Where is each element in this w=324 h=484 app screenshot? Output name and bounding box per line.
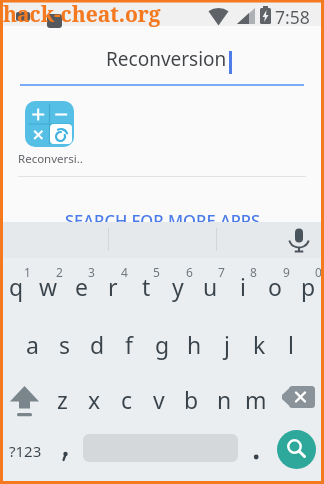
staticText: y [172,271,184,302]
button[interactable]: p [292,260,324,312]
staticText: g [155,329,170,360]
button[interactable]: h [178,318,210,370]
staticText: m [245,384,267,415]
staticText: l [288,329,294,360]
staticText: h [187,329,202,360]
staticText: 3 [88,264,95,277]
button[interactable]: f [113,318,145,370]
button[interactable]: x [78,373,110,425]
staticText: o [268,271,282,302]
button[interactable]: d [81,318,113,370]
button[interactable]: i [227,260,259,312]
staticText: v [153,384,165,415]
button[interactable] [240,436,272,476]
staticText: SEARCH FOR MORE APPS [65,209,260,231]
button[interactable]: SEARCH FOR MORE APPS [0,209,324,231]
button[interactable]: u [194,260,226,312]
staticText: 4 [121,264,128,277]
staticText: ?123 [9,441,42,461]
staticText: s [59,329,71,360]
staticText: w [39,271,58,302]
button[interactable]: g [146,318,178,370]
button[interactable]: a [16,318,48,370]
button[interactable]: Reconversion [0,43,324,75]
button[interactable]: b [175,373,207,425]
staticText: b [184,384,199,415]
staticText: a [26,329,39,360]
staticText: q [9,271,24,302]
staticText: 8 [250,264,257,277]
staticText: 2 [56,264,63,277]
staticText: j [224,329,230,360]
staticText: f [125,329,133,360]
button[interactable]: s [49,318,81,370]
staticText: 9 [283,264,290,277]
button[interactable]: z [46,373,78,425]
staticText: 7 [218,264,225,277]
button[interactable]: v [143,373,175,425]
staticText: i [240,271,246,302]
button[interactable]: m [240,373,272,425]
button[interactable]: t [130,260,162,312]
staticText: n [217,384,232,415]
button[interactable] [6,380,46,420]
button[interactable]: j [211,318,243,370]
staticText: z [57,384,68,415]
button[interactable]: y [162,260,194,312]
button[interactable]: n [208,373,240,425]
button[interactable] [277,430,316,469]
button[interactable]: q [0,260,32,312]
button[interactable]: l [275,318,307,370]
staticText: r [108,271,118,302]
button[interactable]: k [243,318,275,370]
button[interactable]: c [111,373,143,425]
staticText: e [75,271,88,302]
staticText: Reconversion [106,46,227,72]
staticText: 0 [315,264,322,277]
staticText: p [301,271,316,302]
staticText: k [253,329,266,360]
staticText: x [88,384,101,415]
staticText: hack-cheat.org [3,0,161,29]
button[interactable]: w [32,260,64,312]
staticText: 5 [153,264,160,277]
button[interactable] [25,101,74,147]
staticText: 1 [24,264,31,277]
staticText: 7:58 [275,5,310,29]
button[interactable]: r [97,260,129,312]
button[interactable]: o [259,260,291,312]
button[interactable]: e [65,260,97,312]
staticText: Reconversi.. [18,151,83,167]
button[interactable] [49,430,81,470]
button[interactable]: ?123 [3,432,47,469]
staticText: d [90,329,105,360]
staticText: t [142,271,151,302]
button[interactable] [278,380,320,420]
staticText: c [121,384,133,415]
button[interactable] [283,224,315,256]
staticText: u [203,271,218,302]
staticText: 6 [186,264,193,277]
